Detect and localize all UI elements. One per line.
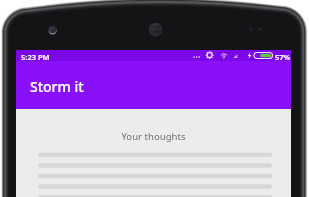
staticText: 57% bbox=[275, 52, 291, 62]
button[interactable] bbox=[38, 162, 272, 171]
button[interactable] bbox=[38, 172, 272, 181]
button[interactable] bbox=[38, 151, 272, 160]
staticText: Storm it bbox=[30, 77, 84, 96]
staticText: 5:23 PM bbox=[21, 52, 50, 62]
button[interactable] bbox=[38, 193, 272, 197]
staticText: Your thoughts bbox=[16, 130, 291, 143]
button[interactable] bbox=[38, 183, 272, 192]
